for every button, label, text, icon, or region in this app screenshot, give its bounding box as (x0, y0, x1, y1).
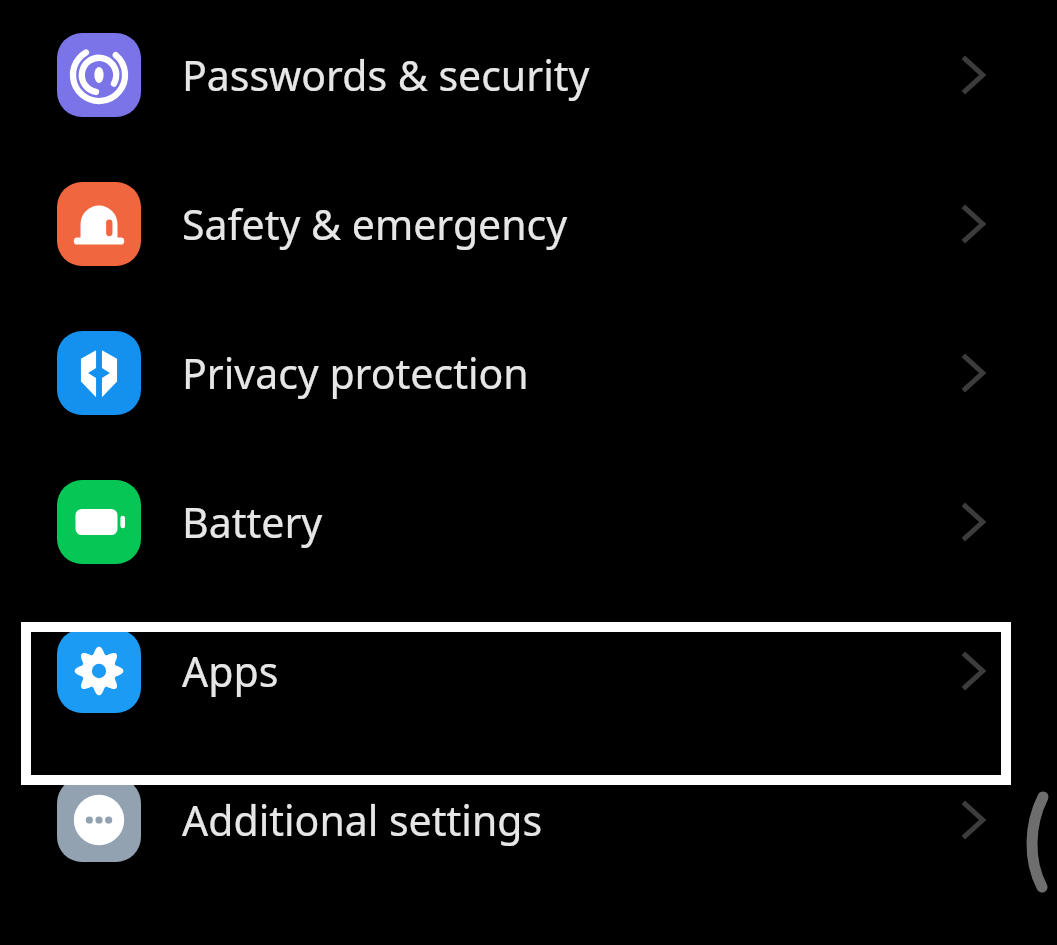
button[interactable]: Privacy protection (0, 298, 1057, 447)
other: Safety & emergency (951, 202, 995, 246)
button[interactable]: Battery (0, 447, 1057, 596)
button[interactable]: Safety & emergency (0, 149, 1057, 298)
staticText: Additional settings (182, 792, 543, 848)
staticText: Privacy protection (182, 345, 529, 401)
other: Apps (951, 649, 995, 693)
button[interactable]: Passwords & security (0, 0, 1057, 149)
button[interactable]: Apps (0, 596, 1057, 745)
other: Passwords & security (951, 53, 995, 97)
other: Privacy protection (951, 351, 995, 395)
staticText: Safety & emergency (182, 196, 568, 252)
staticText: Apps (182, 643, 279, 699)
staticText: Battery (182, 494, 323, 550)
other: Additional settings (951, 798, 995, 842)
button[interactable]: Additional settings (0, 745, 1057, 894)
staticText: Passwords & security (182, 47, 590, 103)
other: Battery (951, 500, 995, 544)
